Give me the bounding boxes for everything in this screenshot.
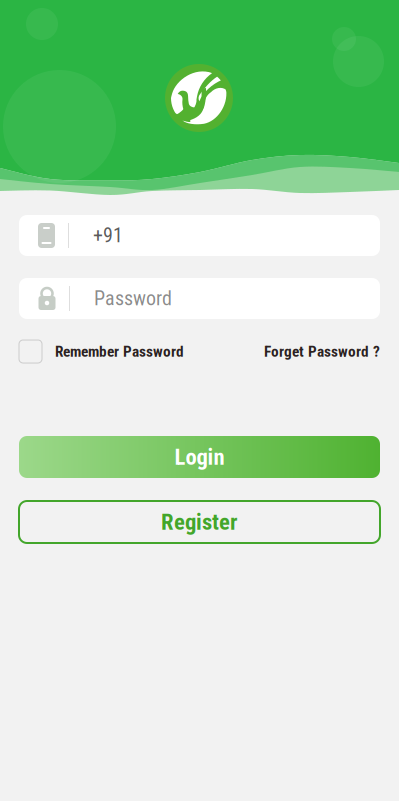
staticText: Login bbox=[174, 444, 224, 470]
staticText: Remember Password bbox=[55, 342, 184, 360]
staticText: Password bbox=[94, 287, 172, 310]
staticText: +91 bbox=[93, 224, 123, 247]
staticText: Forget Password ? bbox=[264, 342, 380, 360]
button[interactable]: Forget Password ? bbox=[264, 342, 380, 360]
button[interactable]: Remember Password bbox=[19, 340, 184, 363]
button[interactable]: Register bbox=[19, 501, 380, 543]
staticText: Register bbox=[161, 509, 238, 535]
button[interactable]: Login bbox=[19, 436, 380, 478]
